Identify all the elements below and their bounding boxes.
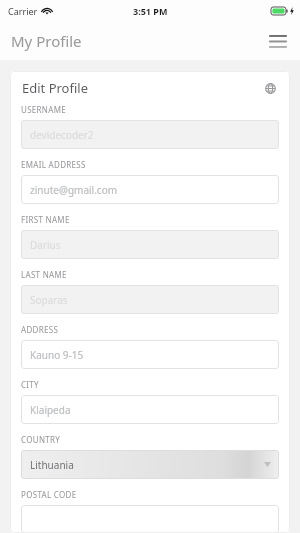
staticText: COUNTRY bbox=[21, 434, 61, 445]
button[interactable]: Darius bbox=[21, 230, 279, 259]
staticText: zinute@gmail.com bbox=[30, 183, 118, 197]
staticText: 3:51 PM bbox=[133, 5, 168, 17]
staticText: ADDRESS bbox=[21, 324, 59, 335]
button[interactable]: Open menu bbox=[263, 26, 293, 56]
button[interactable]: Language bbox=[260, 78, 280, 98]
staticText: EMAIL ADDRESS bbox=[21, 159, 86, 170]
staticText: Soparas bbox=[30, 293, 68, 307]
button[interactable]: Kauno 9-15 bbox=[21, 340, 279, 369]
button[interactable] bbox=[21, 505, 279, 533]
button[interactable]: devidecoder2 bbox=[21, 120, 279, 149]
button[interactable]: zinute@gmail.com bbox=[21, 175, 279, 204]
button[interactable]: Lithuania bbox=[21, 450, 279, 479]
staticText: Kauno 9-15 bbox=[30, 348, 84, 362]
staticText: USERNAME bbox=[21, 104, 66, 115]
staticText: Edit Profile bbox=[22, 79, 89, 97]
staticText: POSTAL CODE bbox=[21, 489, 77, 500]
button[interactable]: Klaipeda bbox=[21, 395, 279, 424]
staticText: Darius bbox=[30, 238, 61, 252]
staticText: devidecoder2 bbox=[30, 128, 94, 142]
button[interactable]: Soparas bbox=[21, 285, 279, 314]
staticText: My Profile bbox=[11, 31, 82, 51]
staticText: FIRST NAME bbox=[21, 214, 70, 225]
staticText: Carrier bbox=[8, 5, 38, 17]
staticText: LAST NAME bbox=[21, 269, 67, 280]
staticText: CITY bbox=[21, 379, 39, 390]
staticText: Lithuania bbox=[30, 458, 74, 472]
staticText: Klaipeda bbox=[30, 403, 71, 417]
